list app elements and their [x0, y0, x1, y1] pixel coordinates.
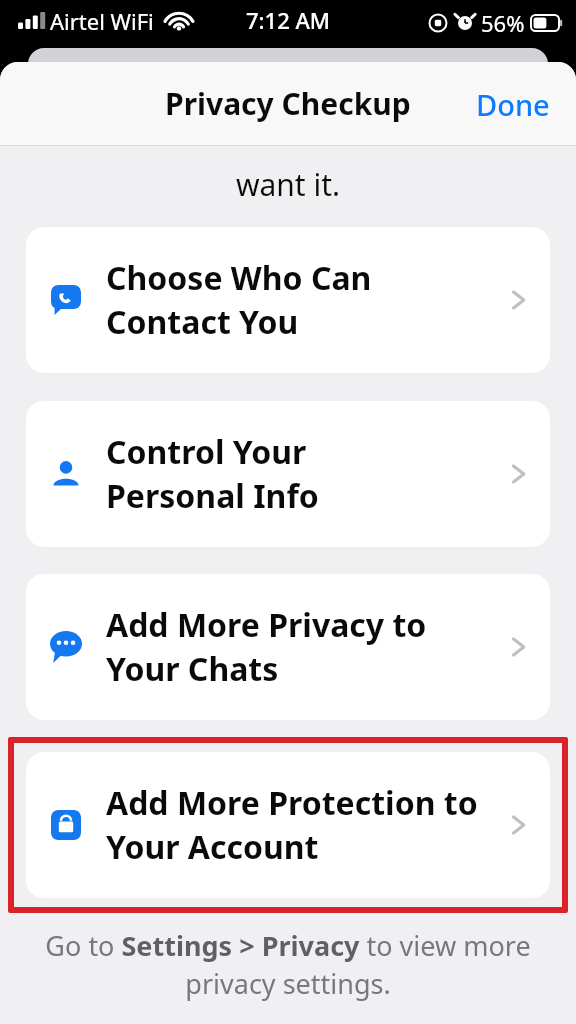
button[interactable]: Add More Privacy to: [26, 574, 550, 720]
staticText: Go to Settings > Privacy to view more pr…: [28, 927, 548, 1002]
staticText: want it.: [0, 164, 576, 205]
staticText: Your Chats: [106, 647, 279, 691]
staticText: Your Account: [106, 825, 319, 869]
button[interactable]: Control Your: [26, 401, 550, 547]
staticText: Privacy Checkup: [165, 83, 411, 124]
staticText: Airtel WiFi: [50, 6, 154, 36]
staticText: Add More Privacy to: [106, 603, 427, 647]
staticText: Personal Info: [106, 474, 319, 518]
button[interactable]: Done: [466, 79, 560, 130]
staticText: Choose Who Can: [106, 256, 372, 300]
button[interactable]: Add More Protection to: [26, 752, 550, 898]
staticText: Add More Protection to: [106, 781, 478, 825]
staticText: Contact You: [106, 300, 299, 344]
staticText: 56%: [481, 8, 525, 38]
staticText: Control Your: [106, 430, 307, 474]
staticText: Done: [476, 85, 550, 124]
button[interactable]: Choose Who Can: [26, 227, 550, 373]
staticText: 7:12 AM: [246, 5, 331, 35]
